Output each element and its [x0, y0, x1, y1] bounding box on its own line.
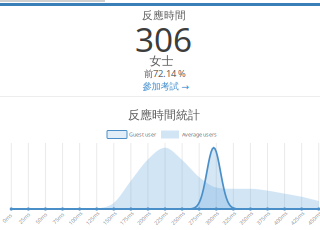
staticText: Guest user [129, 131, 156, 138]
staticText: 反應時間統計 [128, 108, 200, 122]
button[interactable]: 參加考試 → [142, 81, 189, 92]
staticText: 75ms [51, 214, 65, 222]
staticText: Average users [182, 131, 217, 138]
staticText: 參加考試 → [142, 81, 189, 92]
staticText: 275ms [187, 214, 204, 222]
staticText: 225ms [152, 214, 169, 222]
staticText: 450ms [306, 214, 320, 222]
staticText: 50ms [34, 214, 48, 222]
staticText: 25ms [17, 214, 31, 222]
staticText: 前72.14 % [144, 67, 186, 80]
staticText: 100ms [67, 214, 84, 222]
staticText: 306 [135, 17, 192, 61]
staticText: 125ms [84, 214, 101, 222]
staticText: 375ms [255, 214, 272, 222]
staticText: 女士 [149, 54, 173, 68]
staticText: 400ms [272, 214, 289, 222]
staticText: 350ms [238, 214, 255, 222]
staticText: 175ms [118, 214, 135, 222]
staticText: 150ms [101, 214, 118, 222]
staticText: 325ms [221, 214, 238, 222]
staticText: 反應時間 [142, 9, 186, 22]
staticText: 300ms [204, 214, 221, 222]
staticText: 425ms [289, 214, 306, 222]
staticText: 0ms [2, 214, 13, 222]
staticText: 250ms [170, 214, 187, 222]
staticText: 200ms [135, 214, 152, 222]
